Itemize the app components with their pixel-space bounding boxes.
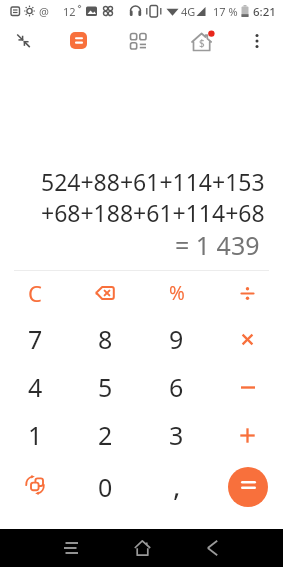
- button[interactable]: [128, 31, 149, 52]
- button[interactable]: 1: [0, 411, 70, 459]
- button[interactable]: [212, 271, 283, 315]
- button[interactable]: [248, 30, 266, 54]
- staticText: 0: [98, 470, 113, 504]
- button[interactable]: [70, 271, 141, 315]
- staticText: ,: [173, 466, 181, 504]
- button[interactable]: [212, 363, 283, 411]
- button[interactable]: 5: [70, 363, 141, 411]
- button[interactable]: 7: [0, 315, 70, 363]
- staticText: 2: [98, 418, 113, 452]
- button[interactable]: [13, 32, 33, 50]
- staticText: 12: [63, 4, 76, 19]
- button[interactable]: 4: [0, 363, 70, 411]
- staticText: 6:21: [253, 4, 276, 20]
- button[interactable]: [118, 529, 166, 567]
- button[interactable]: [70, 32, 87, 49]
- button[interactable]: [188, 529, 236, 567]
- staticText: $: [199, 36, 205, 50]
- button[interactable]: [212, 411, 283, 459]
- staticText: +68+188+61+114+68: [41, 197, 265, 228]
- staticText: C: [28, 278, 42, 308]
- staticText: = 1 439: [175, 228, 260, 262]
- button[interactable]: [212, 315, 283, 363]
- button[interactable]: 8: [70, 315, 141, 363]
- button[interactable]: 2: [70, 411, 141, 459]
- button[interactable]: 6: [141, 363, 212, 411]
- button[interactable]: [212, 459, 283, 511]
- staticText: %: [169, 280, 185, 306]
- staticText: 17 %: [213, 4, 238, 19]
- button[interactable]: $: [188, 29, 216, 55]
- staticText: 4G: [181, 4, 196, 19]
- staticText: 8: [98, 322, 113, 356]
- button[interactable]: 9: [141, 315, 212, 363]
- button[interactable]: [0, 459, 70, 511]
- staticText: @: [39, 4, 49, 19]
- button[interactable]: 0: [70, 459, 141, 511]
- staticText: 5: [98, 370, 113, 404]
- staticText: 9: [169, 322, 184, 356]
- staticText: 4: [28, 370, 43, 404]
- staticText: 524+88+61+114+153: [41, 166, 265, 197]
- button[interactable]: 3: [141, 411, 212, 459]
- staticText: 6: [169, 370, 184, 404]
- staticText: 7: [28, 322, 43, 356]
- staticText: 3: [169, 418, 184, 452]
- button[interactable]: ,: [141, 459, 212, 511]
- button[interactable]: %: [141, 271, 212, 315]
- staticText: 1: [28, 418, 43, 452]
- button[interactable]: [47, 529, 95, 567]
- button[interactable]: C: [0, 271, 70, 315]
